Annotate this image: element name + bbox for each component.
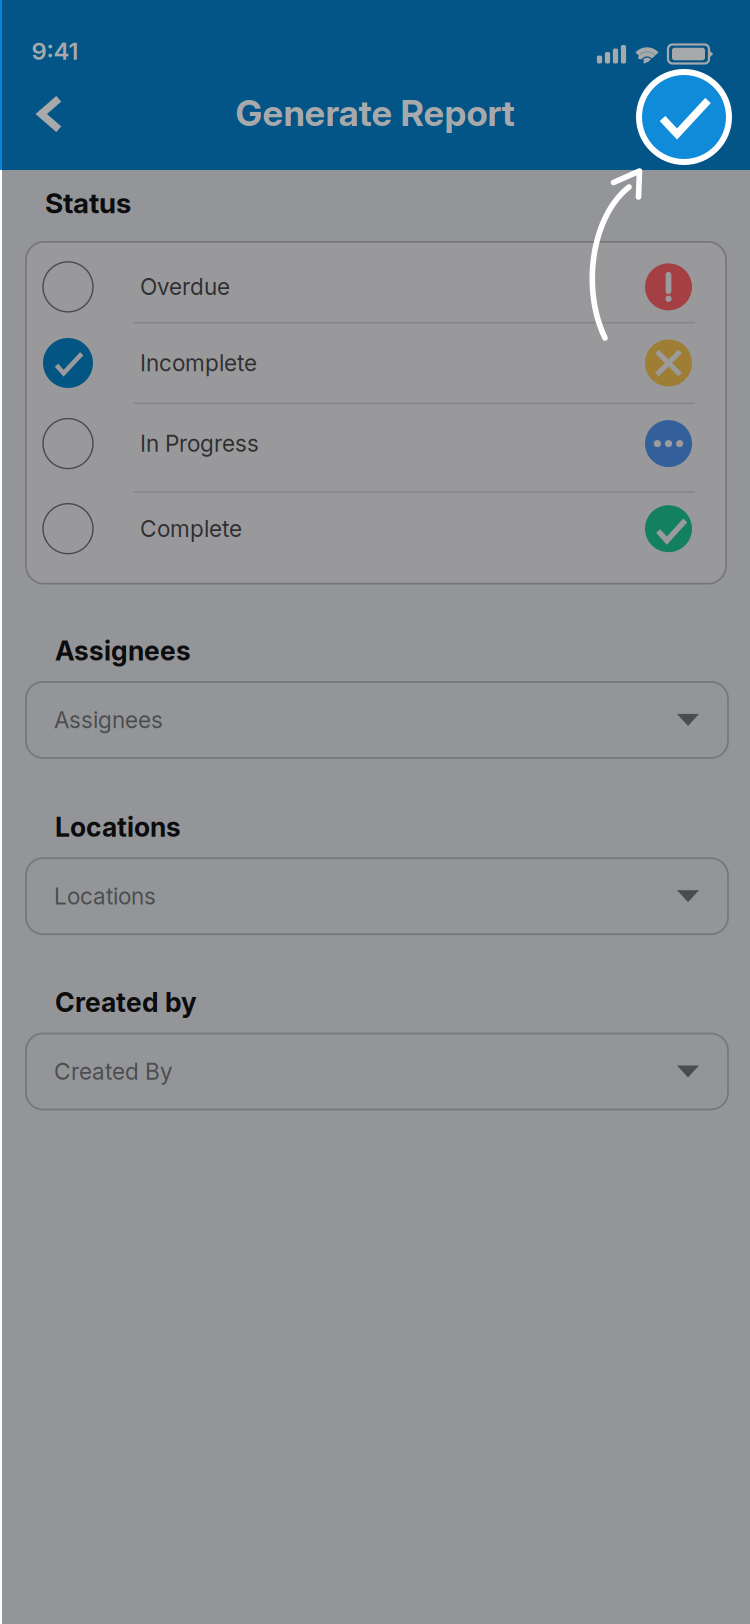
button[interactable]: Done [636, 69, 732, 165]
staticText: Assignees [55, 635, 191, 667]
staticText: Complete [140, 515, 242, 542]
staticText: 9:41 [31, 36, 78, 65]
button[interactable]: In Progress [26, 404, 726, 483]
button[interactable]: Back [15, 79, 85, 149]
button[interactable]: Complete [26, 493, 726, 565]
button[interactable]: Locations [26, 858, 728, 934]
staticText: Assignees [54, 706, 163, 734]
staticText: Locations [54, 882, 156, 910]
staticText: In Progress [140, 430, 259, 457]
staticText: Created by [55, 986, 197, 1018]
button[interactable]: Created By [26, 1033, 728, 1109]
staticText: Status [45, 186, 131, 220]
button[interactable]: Incomplete [26, 323, 726, 402]
staticText: Locations [55, 811, 181, 843]
staticText: Overdue [140, 273, 230, 301]
button[interactable]: Overdue [26, 252, 726, 322]
staticText: Generate Report [235, 91, 514, 135]
button[interactable]: Assignees [26, 682, 728, 758]
staticText: Created By [54, 1058, 173, 1085]
staticText: Incomplete [140, 349, 257, 377]
